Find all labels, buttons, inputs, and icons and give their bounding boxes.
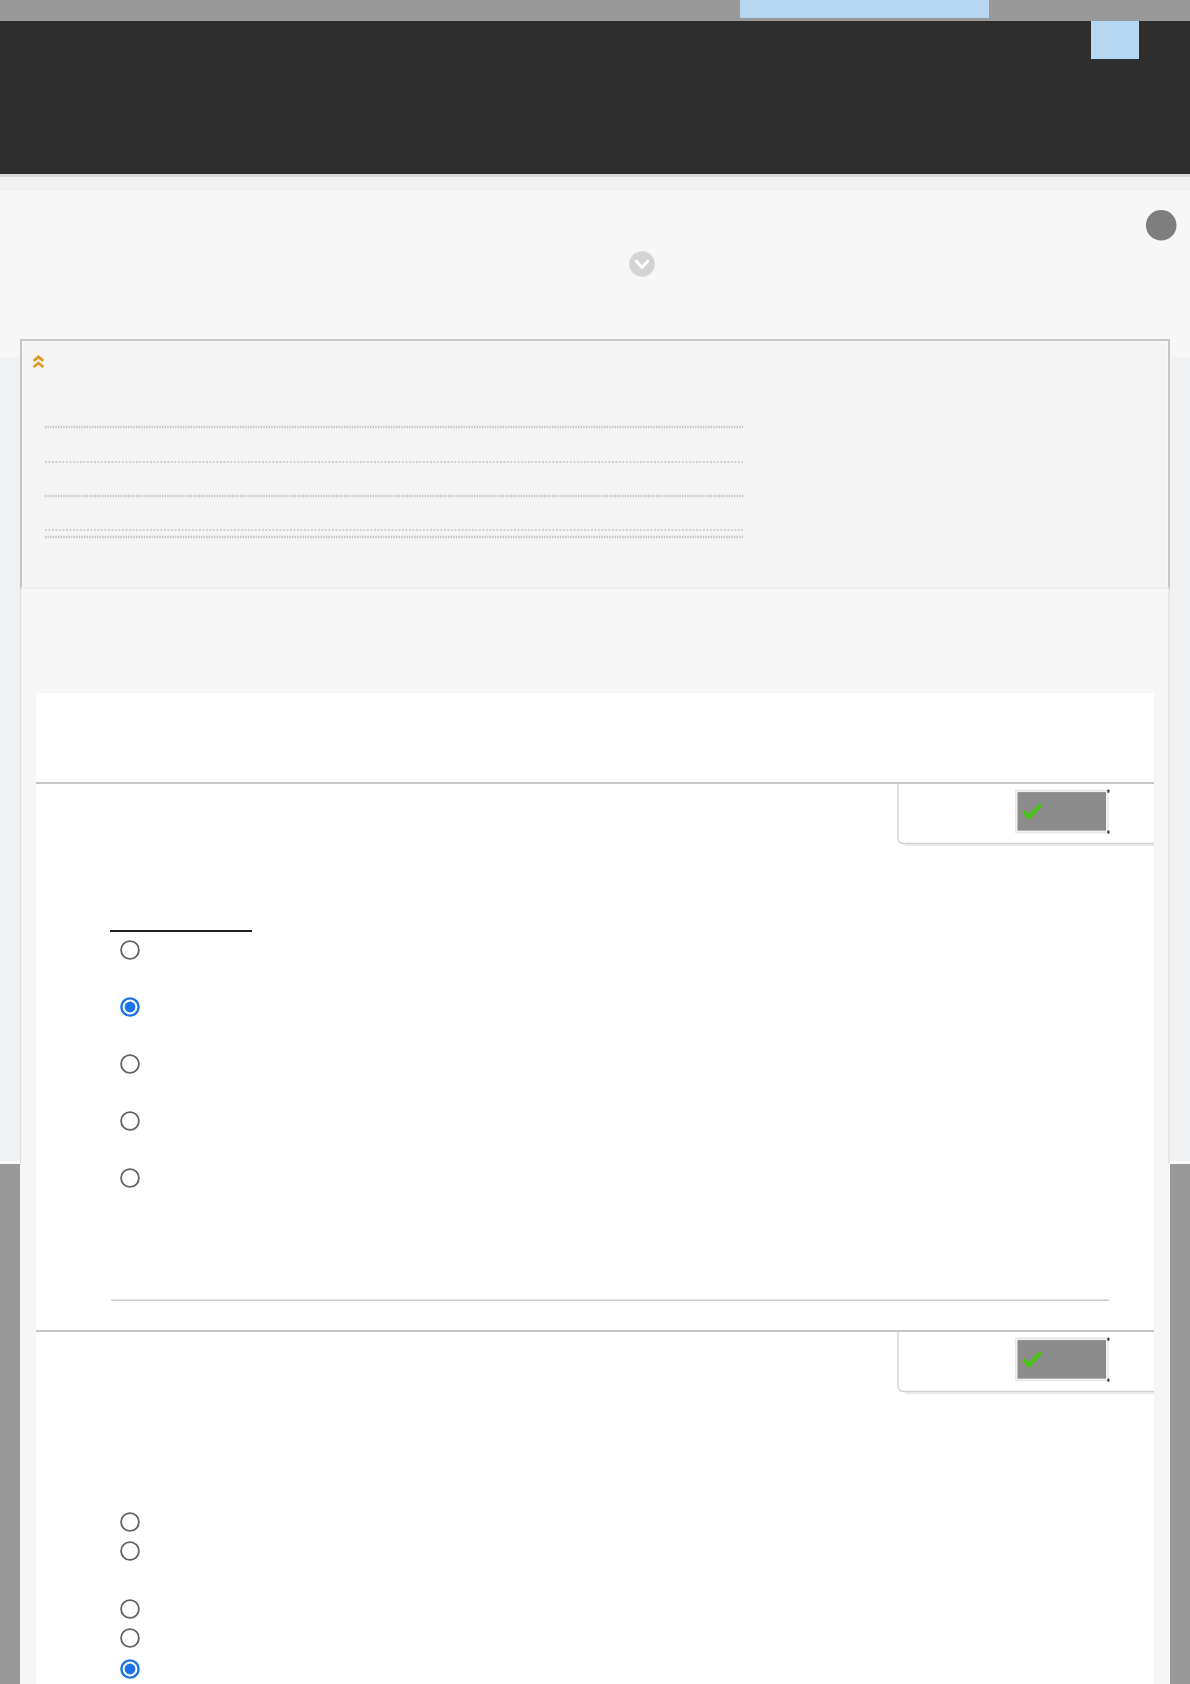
button[interactable]: Answer option <box>119 1598 141 1620</box>
button[interactable]: Answer option <box>119 939 141 961</box>
button[interactable]: Answer option <box>119 1167 141 1189</box>
button[interactable]: Answer option <box>119 996 141 1018</box>
button[interactable]: Answer option <box>119 1110 141 1132</box>
button[interactable]: Check answer <box>1015 789 1109 834</box>
button[interactable]: Answer option <box>119 1540 141 1562</box>
button[interactable]: Account <box>1145 209 1177 241</box>
button[interactable]: Answer option <box>119 1658 141 1680</box>
button[interactable]: Answer option <box>119 1511 141 1533</box>
button[interactable]: Check answer <box>1015 1337 1109 1382</box>
button[interactable]: Answer option <box>119 1053 141 1075</box>
button[interactable]: Answer option <box>119 1627 141 1649</box>
button[interactable]: Collapse section <box>28 350 50 372</box>
button[interactable]: Expand section <box>629 251 655 277</box>
